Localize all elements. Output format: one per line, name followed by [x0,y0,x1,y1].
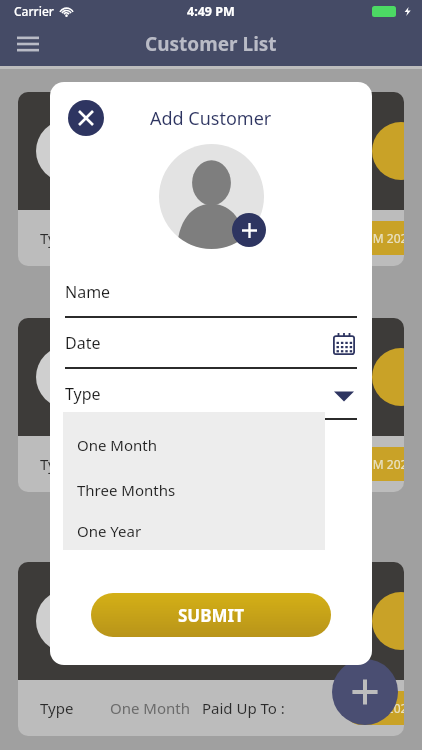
button[interactable]: Three Months [63,467,325,512]
other: Expand type [331,383,357,409]
staticText: Name [65,281,111,303]
other: Pick date [331,331,357,357]
staticText: Type [65,383,101,405]
staticText: 4:49 PM [187,3,235,20]
staticText: One Month [110,228,190,248]
staticText: Date [65,332,101,354]
staticText: Type [40,228,74,248]
button[interactable]: Name [65,274,357,318]
staticText: Paid Up To : [202,698,285,718]
button[interactable]: Close [68,100,104,136]
button[interactable]: SUBMIT [91,593,331,637]
staticText: Add Customer [150,106,272,131]
staticText: One Month [77,435,157,455]
staticText: One Month [110,698,190,718]
button[interactable]: One Year [63,512,325,550]
button[interactable]: Type [18,318,404,492]
button[interactable]: Add photo [232,213,266,247]
staticText: 18 M 2020 [356,700,404,716]
button[interactable]: Type [18,92,404,266]
staticText: 18 M 2020 [356,456,404,472]
button[interactable]: Add customer [332,659,398,725]
staticText: Type [40,454,74,474]
staticText: Type [40,698,74,718]
button[interactable]: Date [65,325,357,369]
staticText: SUBMIT [178,604,244,627]
staticText: Customer List [145,31,277,57]
staticText: Carrier [14,3,54,19]
button[interactable]: One Month [63,422,325,467]
staticText: Three Months [77,480,176,500]
staticText: One Year [77,521,142,541]
button[interactable]: Type [18,562,404,736]
staticText: Paid Up To : [202,228,285,248]
staticText: 18 M 2020 [356,230,404,246]
button[interactable]: Type [65,376,357,420]
button[interactable]: Menu [10,26,46,62]
